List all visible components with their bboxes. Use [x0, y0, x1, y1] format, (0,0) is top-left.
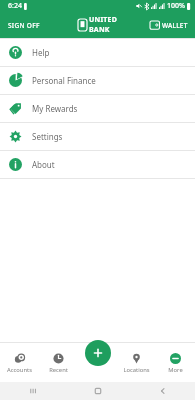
staticText: BANK: [89, 25, 110, 35]
staticText: My Rewards: [32, 103, 78, 114]
button[interactable]: Add: [85, 340, 111, 366]
button[interactable]: About: [0, 151, 195, 178]
button[interactable]: Accounts: [0, 344, 39, 382]
staticText: SIGN OFF: [8, 21, 40, 30]
button[interactable]: Recent: [39, 344, 78, 382]
staticText: 6:24: [8, 1, 22, 11]
staticText: WALLET: [162, 21, 188, 30]
button[interactable]: SIGN OFF: [0, 12, 48, 38]
button[interactable]: More: [156, 344, 195, 382]
button[interactable]: Personal Finance: [0, 67, 195, 94]
staticText: UNITED: [89, 15, 117, 25]
staticText: 100%: [167, 1, 185, 11]
button[interactable]: Locations: [117, 344, 156, 382]
staticText: Recent: [49, 366, 68, 374]
staticText: More: [168, 366, 183, 374]
staticText: Help: [32, 47, 50, 58]
staticText: Locations: [123, 366, 150, 374]
staticText: Personal Finance: [32, 75, 96, 86]
button[interactable]: Settings: [0, 123, 195, 150]
button[interactable]: Help: [0, 39, 195, 66]
staticText: Settings: [32, 131, 63, 142]
staticText: Accounts: [7, 366, 32, 374]
button[interactable]: WALLET: [143, 12, 195, 38]
button[interactable]: My Rewards: [0, 95, 195, 122]
staticText: About: [32, 159, 55, 170]
